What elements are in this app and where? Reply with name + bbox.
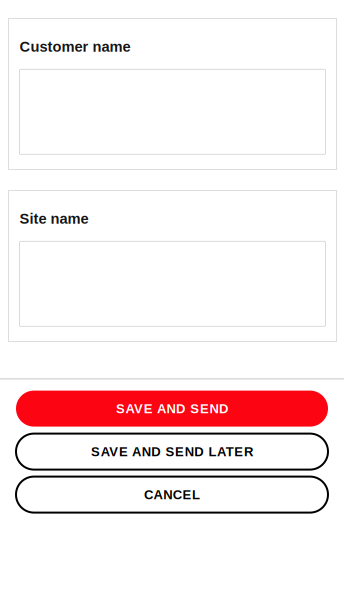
staticText: Customer name <box>19 38 130 55</box>
staticText: CANCEL <box>144 487 200 502</box>
staticText: SAVE AND SEND <box>116 401 228 416</box>
button[interactable]: Customer name <box>19 69 325 154</box>
button[interactable]: Site name <box>19 241 325 326</box>
button[interactable]: SAVE AND SEND LATER <box>16 434 328 470</box>
staticText: SAVE AND SEND LATER <box>91 444 253 459</box>
staticText: Site name <box>19 210 88 227</box>
button[interactable]: CANCEL <box>16 477 328 513</box>
button[interactable]: SAVE AND SEND <box>16 391 328 427</box>
